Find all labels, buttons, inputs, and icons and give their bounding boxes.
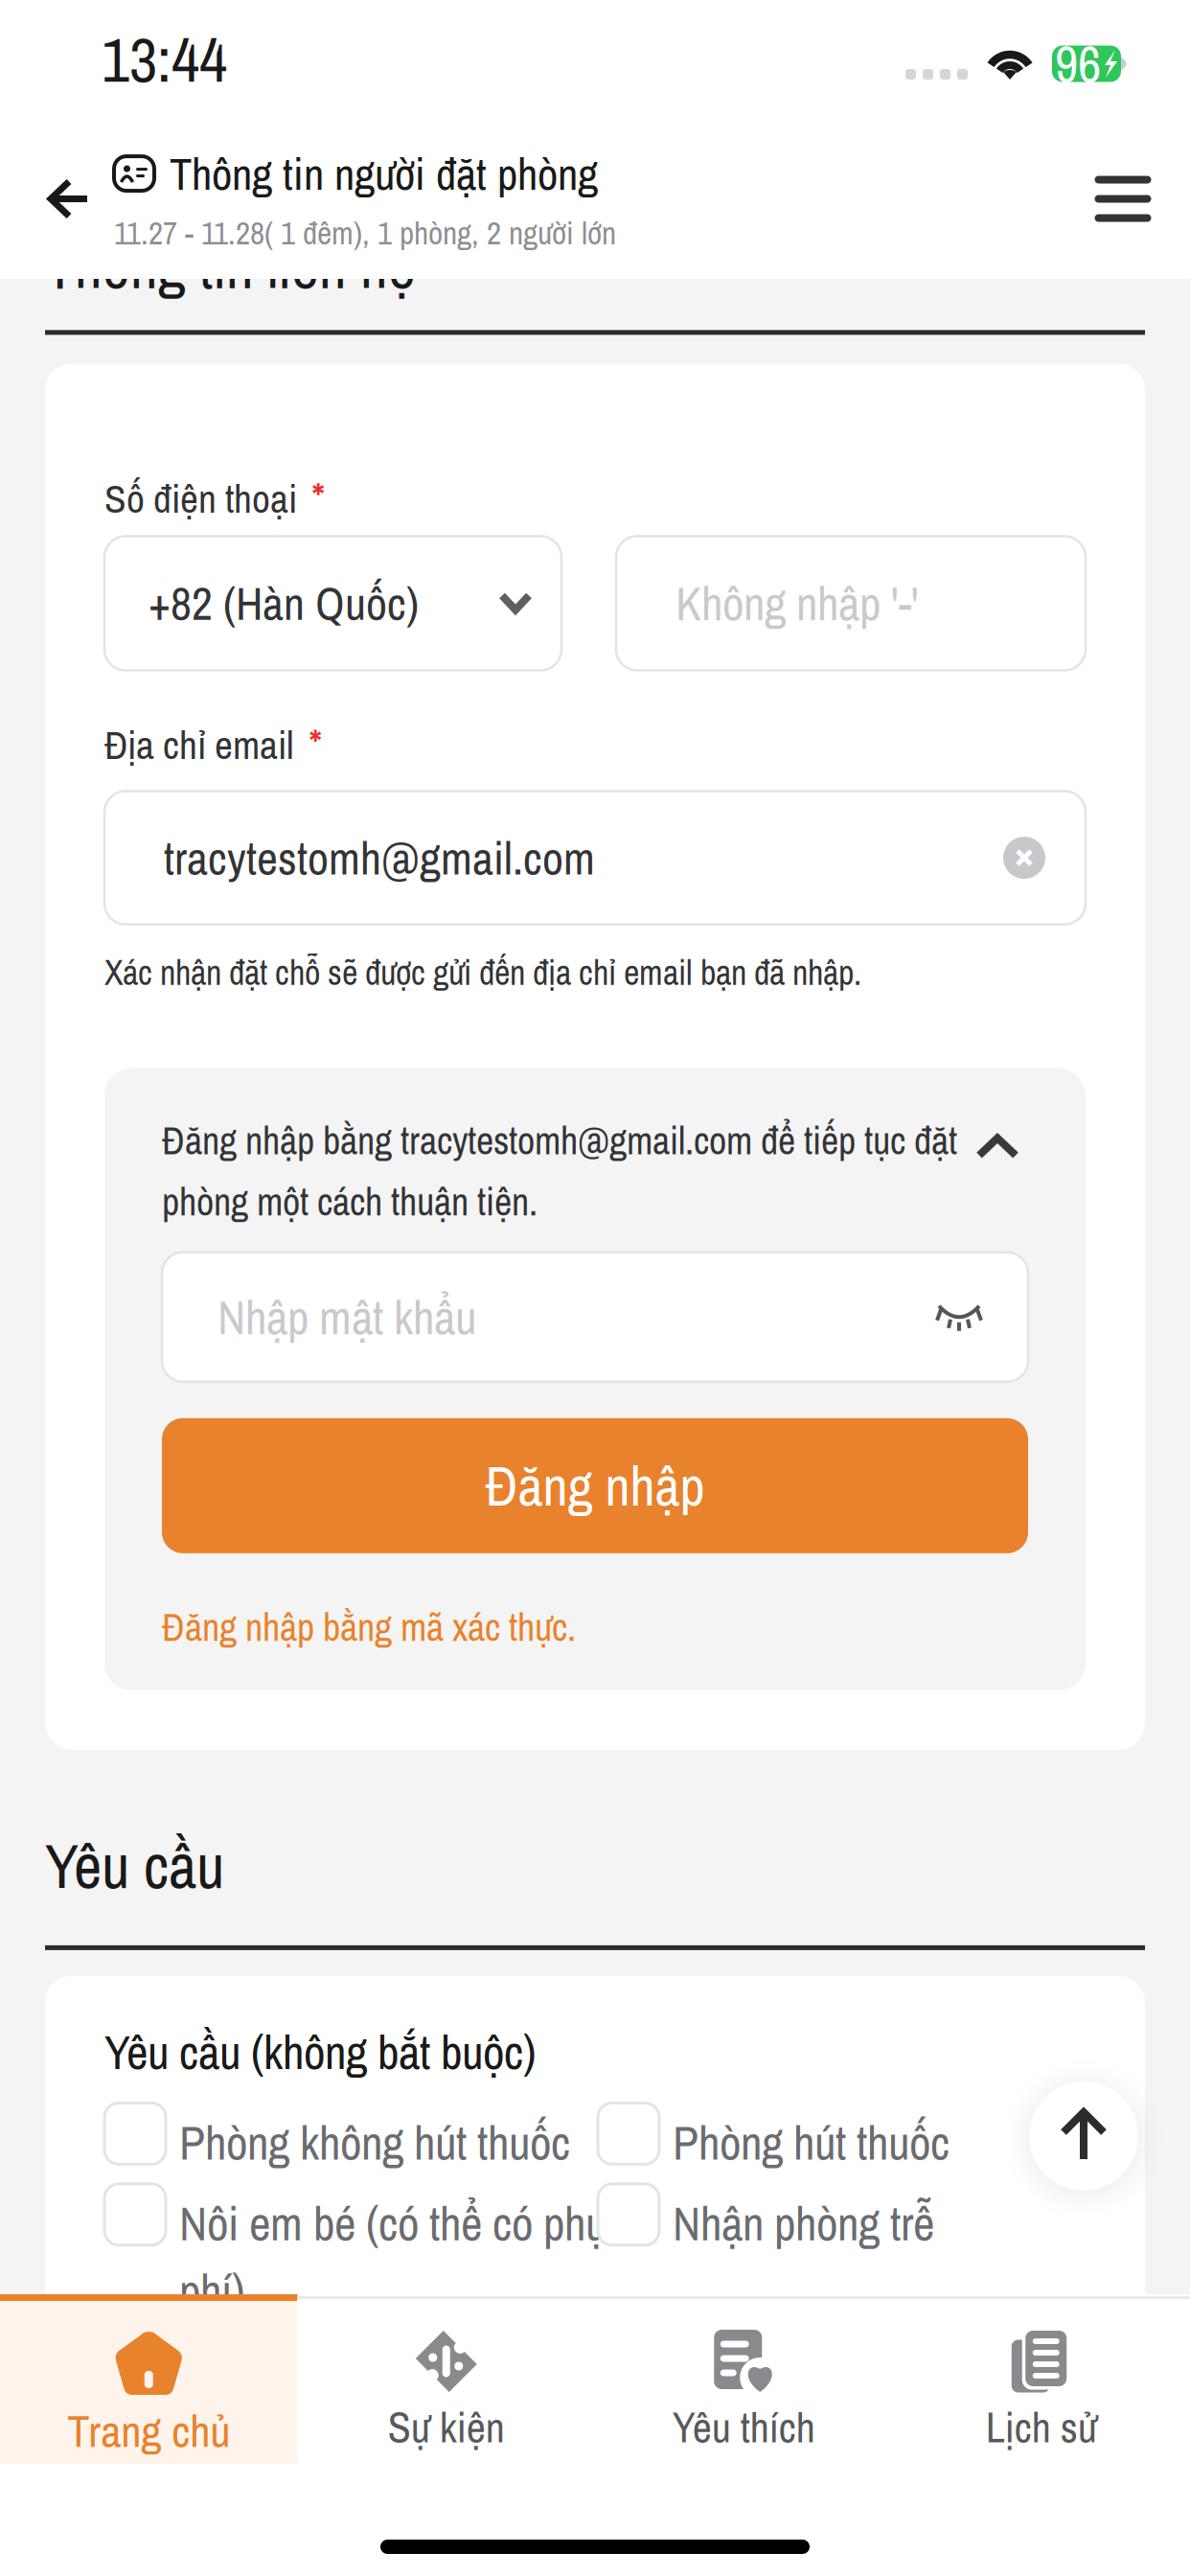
- button[interactable]: Scroll to top: [1029, 2081, 1138, 2191]
- staticText: Thông tin liên hệ: [45, 226, 416, 307]
- staticText: Yêu thích: [672, 2399, 815, 2456]
- button[interactable]: Sự kiện: [297, 2296, 595, 2462]
- staticText: Số điện thoại: [104, 472, 297, 525]
- button[interactable]: Phòng không hút thuốc: [104, 2103, 598, 2174]
- button[interactable]: Clear email: [1003, 837, 1045, 879]
- staticText: Sự kiện: [388, 2399, 505, 2456]
- button[interactable]: Nhận phòng trễ: [598, 2184, 1086, 2255]
- staticText: *: [309, 715, 322, 774]
- button[interactable]: Show password: [937, 1302, 982, 1332]
- staticText: Xác nhận đặt chỗ sẽ được gửi đến địa chỉ…: [104, 949, 861, 996]
- staticText: Yêu cầu: [45, 1824, 224, 1907]
- staticText: Yêu cầu (không bắt buộc): [104, 2020, 536, 2084]
- staticText: Đăng nhập: [485, 1449, 705, 1523]
- staticText: Nôi em bé (có thể có phụ phí): [179, 2192, 606, 2323]
- staticText: +82 (Hàn Quốc): [149, 572, 419, 634]
- staticText: tracytestomh@gmail.com: [164, 827, 595, 889]
- button[interactable]: Yêu thích: [595, 2296, 892, 2462]
- staticText: Nhận phòng trễ: [673, 2192, 934, 2255]
- button[interactable]: Trang chủ: [0, 2294, 297, 2464]
- staticText: Phòng không hút thuốc: [179, 2111, 570, 2174]
- staticText: Trang chủ: [67, 2401, 230, 2461]
- staticText: Đăng nhập bằng mã xác thực.: [162, 1601, 576, 1653]
- staticText: Không nhập '-': [675, 571, 919, 635]
- button[interactable]: Collapse: [967, 1116, 1028, 1178]
- staticText: 96: [1055, 29, 1101, 98]
- staticText: 13:44: [102, 18, 227, 101]
- staticText: Nhập mật khẩu: [217, 1285, 476, 1349]
- button[interactable]: Đăng nhập: [162, 1418, 1028, 1553]
- button[interactable]: Nôi em bé (có thể có phụ phí): [104, 2184, 598, 2323]
- button[interactable]: Đăng nhập bằng mã xác thực.: [162, 1553, 576, 1690]
- staticText: Đăng nhập bằng tracytestomh@gmail.com để…: [162, 1115, 957, 1166]
- staticText: Địa chỉ email: [104, 718, 294, 771]
- button[interactable]: Phòng hút thuốc: [598, 2103, 1086, 2174]
- staticText: Thông tin người đặt phòng: [170, 143, 598, 204]
- staticText: phòng một cách thuận tiện.: [162, 1176, 538, 1227]
- button[interactable]: Lịch sử: [892, 2296, 1190, 2462]
- staticText: Phòng hút thuốc: [673, 2111, 950, 2174]
- staticText: Lịch sử: [986, 2399, 1097, 2456]
- button[interactable]: Menu: [1070, 146, 1176, 252]
- button[interactable]: Back: [24, 146, 114, 252]
- staticText: 11.27 - 11.28( 1 đêm), 1 phòng, 2 người …: [114, 211, 616, 254]
- staticText: *: [311, 469, 325, 528]
